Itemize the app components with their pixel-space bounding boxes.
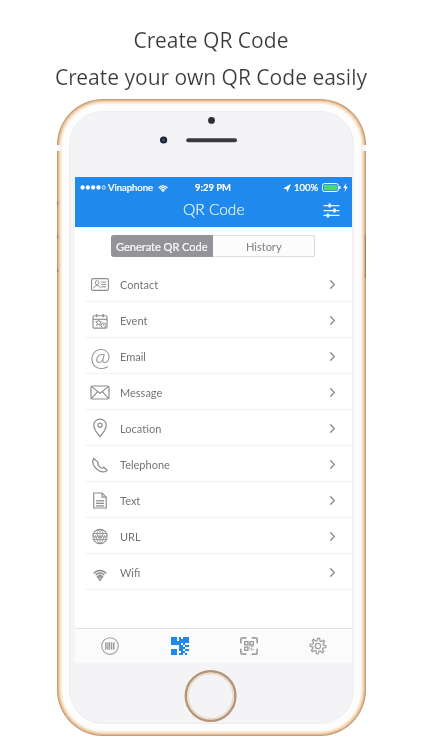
staticText: Location <box>120 422 162 435</box>
staticText: Vinaphone <box>108 182 154 193</box>
staticText: URL <box>120 530 141 543</box>
button[interactable]: Location <box>75 410 352 446</box>
staticText: Event <box>120 314 148 327</box>
button[interactable]: Settings <box>283 628 352 663</box>
staticText: 9:29 PM <box>195 182 232 193</box>
staticText: Text <box>120 494 141 507</box>
button[interactable]: URL <box>75 518 352 554</box>
staticText: Create QR Code <box>0 26 422 55</box>
staticText: Wifi <box>120 566 141 579</box>
button[interactable]: Settings <box>324 204 339 217</box>
staticText: Contact <box>120 278 159 291</box>
staticText: Generate QR Code <box>116 240 208 253</box>
staticText: QR Code <box>183 200 245 219</box>
button[interactable]: Contact <box>75 266 352 302</box>
button[interactable]: Scan QR code <box>214 628 283 663</box>
button[interactable]: Telephone <box>75 446 352 482</box>
staticText: Email <box>120 350 146 363</box>
button[interactable]: @ <box>75 338 352 374</box>
staticText: 100% <box>294 182 319 193</box>
staticText: History <box>246 240 282 253</box>
button[interactable]: Generate QR Code <box>111 235 213 257</box>
staticText: Message <box>120 386 163 399</box>
button[interactable]: Text <box>75 482 352 518</box>
staticText: Telephone <box>120 458 170 471</box>
staticText: Create your own QR Code easily <box>0 63 422 92</box>
button[interactable]: Barcode scanner <box>75 628 145 663</box>
button[interactable]: Generate QR code <box>145 628 214 663</box>
button[interactable]: Wifi <box>75 554 352 590</box>
button[interactable]: Event <box>75 302 352 338</box>
staticText: @ <box>90 341 111 371</box>
button[interactable]: History <box>213 235 315 257</box>
button[interactable]: Message <box>75 374 352 410</box>
